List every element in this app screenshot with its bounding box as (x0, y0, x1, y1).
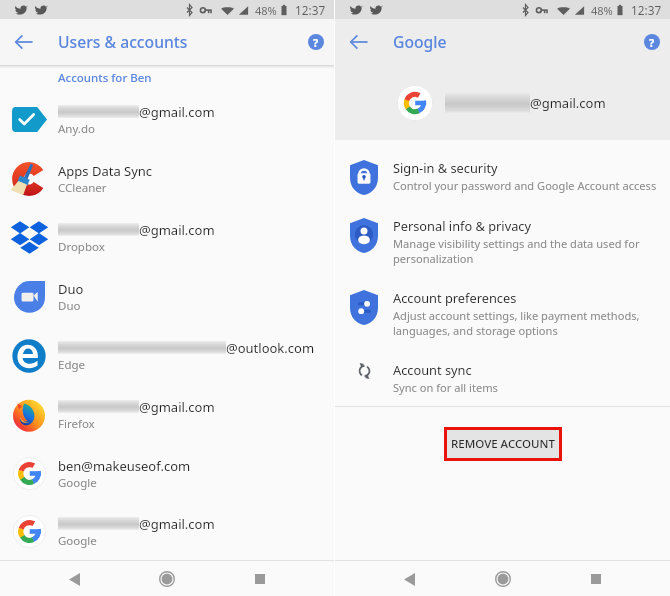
staticText: Duo (58, 298, 81, 314)
staticText: Edge (58, 357, 86, 373)
button[interactable]: Personal info & privacy (335, 209, 670, 281)
staticText: Accounts for Ben (58, 70, 152, 86)
staticText: ? (649, 35, 655, 50)
staticText: Google (58, 533, 97, 549)
staticText: Duo (58, 280, 84, 297)
staticText: ben@makeuseof.com (58, 457, 191, 474)
staticText: Control your password and Google Account… (393, 178, 657, 193)
staticText: Personal info & privacy (393, 217, 532, 234)
button[interactable]: Navigate up (342, 25, 376, 59)
staticText: personalization (393, 251, 474, 266)
staticText: Firefox (58, 416, 95, 432)
button[interactable]: Sign-in & security (335, 151, 670, 209)
staticText: @gmail.com (139, 398, 215, 415)
staticText: Sync on for all items (393, 380, 498, 395)
staticText: 12:37 (295, 2, 326, 18)
staticText: Any.do (58, 121, 95, 137)
staticText: @gmail.com (139, 221, 215, 238)
staticText: @outlook.com (226, 339, 315, 356)
button[interactable]: Home (151, 563, 183, 595)
staticText: Sign-in & security (393, 159, 498, 176)
staticText: Google (393, 31, 447, 52)
button[interactable]: @gmail.com (0, 503, 334, 560)
staticText: @gmail.com (530, 94, 606, 112)
staticText: Account sync (393, 361, 472, 378)
button[interactable]: Account preferences (335, 281, 670, 353)
staticText: Apps Data Sync (58, 162, 153, 179)
staticText: CCleaner (58, 180, 107, 196)
button[interactable]: @outlook.com (0, 326, 334, 385)
button[interactable]: @gmail.com (0, 208, 334, 267)
staticText: Manage visibility settings and the data … (393, 236, 640, 251)
staticText: @gmail.com (139, 515, 215, 532)
staticText: 12:37 (631, 2, 662, 18)
button[interactable]: Help (638, 28, 666, 56)
staticText: @gmail.com (139, 103, 215, 120)
staticText: Account preferences (393, 289, 517, 306)
button[interactable]: ben@makeuseof.com (0, 444, 334, 503)
staticText: 48% (255, 3, 277, 18)
button[interactable]: Back (58, 563, 90, 595)
staticText: REMOVE ACCOUNT (451, 436, 555, 452)
staticText: Google (58, 475, 97, 491)
staticText: Users & accounts (58, 31, 188, 52)
staticText: Adjust account settings, like payment me… (393, 308, 640, 323)
button[interactable]: Apps Data Sync (0, 149, 334, 208)
staticText: Dropbox (58, 239, 105, 255)
button[interactable]: Back (393, 563, 425, 595)
button[interactable]: Recent apps (580, 563, 612, 595)
button[interactable]: REMOVE ACCOUNT (447, 430, 559, 458)
button[interactable]: Recent apps (244, 563, 276, 595)
button[interactable]: Account sync (335, 353, 670, 406)
button[interactable]: @gmail.com (0, 90, 334, 149)
staticText: languages, and storage options (393, 323, 558, 338)
staticText: 48% (591, 3, 613, 18)
button[interactable]: Help (302, 28, 330, 56)
button[interactable]: Duo (0, 267, 334, 326)
button[interactable]: Navigate up (7, 25, 41, 59)
button[interactable]: Home (487, 563, 519, 595)
staticText: ? (313, 35, 319, 50)
button[interactable]: @gmail.com (0, 385, 334, 444)
